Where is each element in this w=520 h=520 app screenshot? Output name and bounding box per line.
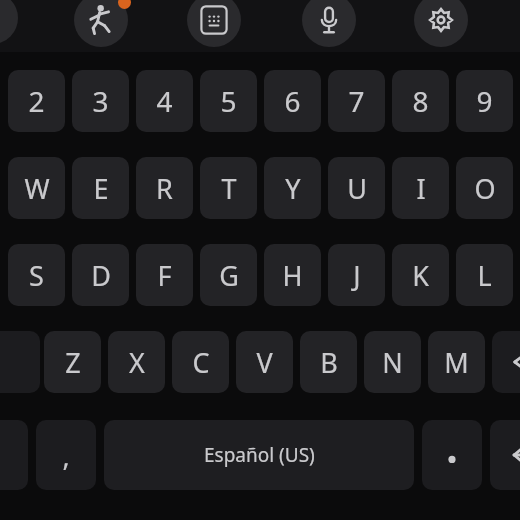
staticText: I — [416, 170, 426, 207]
staticText: L — [477, 257, 492, 294]
button[interactable]: U — [328, 157, 385, 219]
staticText: Z — [65, 344, 81, 381]
button[interactable]: 3 — [72, 70, 129, 132]
staticText: U — [347, 170, 367, 207]
staticText: N — [382, 344, 403, 381]
staticText: E — [93, 170, 109, 207]
staticText: , — [62, 437, 70, 474]
button[interactable]: R — [136, 157, 193, 219]
button[interactable]: 9 — [456, 70, 513, 132]
button[interactable]: M — [428, 331, 485, 393]
staticText: T — [221, 170, 237, 207]
button[interactable]: X — [108, 331, 165, 393]
button[interactable]: C — [172, 331, 229, 393]
staticText: W — [24, 170, 50, 207]
button[interactable]: T — [200, 157, 257, 219]
staticText: Y — [285, 170, 301, 207]
staticText: H — [282, 257, 303, 294]
staticText: 6 — [284, 82, 301, 120]
button[interactable]: 8 — [392, 70, 449, 132]
button[interactable]: J — [328, 244, 385, 306]
button[interactable]: Settings — [414, 0, 468, 47]
button[interactable]: N — [364, 331, 421, 393]
staticText: 7 — [348, 82, 365, 120]
button[interactable]: B — [300, 331, 357, 393]
staticText: 8 — [412, 82, 429, 120]
staticText: O — [474, 170, 496, 207]
button[interactable]: S — [8, 244, 65, 306]
staticText: G — [219, 257, 239, 294]
staticText: K — [412, 257, 429, 294]
staticText: 3 — [92, 82, 109, 120]
button[interactable]: Backspace — [492, 331, 520, 393]
staticText: X — [129, 344, 145, 381]
staticText: B — [320, 344, 338, 381]
staticText: S — [29, 257, 44, 294]
button[interactable]: Period — [422, 420, 482, 490]
staticText: D — [91, 257, 111, 294]
button[interactable]: 5 — [200, 70, 257, 132]
button[interactable]: G — [200, 244, 257, 306]
staticText: Español (US) — [204, 442, 315, 468]
button[interactable]: I — [392, 157, 449, 219]
button[interactable]: Voice input — [302, 0, 356, 47]
button[interactable]: D — [72, 244, 129, 306]
staticText: V — [256, 344, 273, 381]
staticText: C — [192, 344, 210, 381]
button[interactable]: 2 — [8, 70, 65, 132]
staticText: R — [156, 170, 173, 207]
button[interactable]: Comma — [36, 420, 96, 490]
staticText: 4 — [156, 82, 173, 120]
button[interactable]: 6 — [264, 70, 321, 132]
staticText: 2 — [28, 82, 45, 120]
button[interactable]: More — [0, 0, 18, 44]
button[interactable]: Y — [264, 157, 321, 219]
staticText: 5 — [220, 82, 237, 120]
button[interactable]: Español (US) — [104, 420, 414, 490]
button[interactable]: Enter — [490, 420, 520, 490]
staticText: F — [157, 257, 172, 294]
button[interactable]: Activity — [74, 0, 128, 47]
button[interactable]: Z — [44, 331, 101, 393]
button[interactable]: W — [8, 157, 65, 219]
button[interactable]: 4 — [136, 70, 193, 132]
button[interactable]: V — [236, 331, 293, 393]
button[interactable]: E — [72, 157, 129, 219]
button[interactable]: Keyboard layout — [187, 0, 241, 47]
staticText: M — [444, 344, 469, 381]
button[interactable]: H — [264, 244, 321, 306]
button[interactable]: K — [392, 244, 449, 306]
staticText: 9 — [476, 82, 493, 120]
button[interactable]: F — [136, 244, 193, 306]
button[interactable]: O — [456, 157, 513, 219]
staticText: J — [353, 257, 361, 294]
button[interactable]: 7 — [328, 70, 385, 132]
button[interactable]: L — [456, 244, 513, 306]
